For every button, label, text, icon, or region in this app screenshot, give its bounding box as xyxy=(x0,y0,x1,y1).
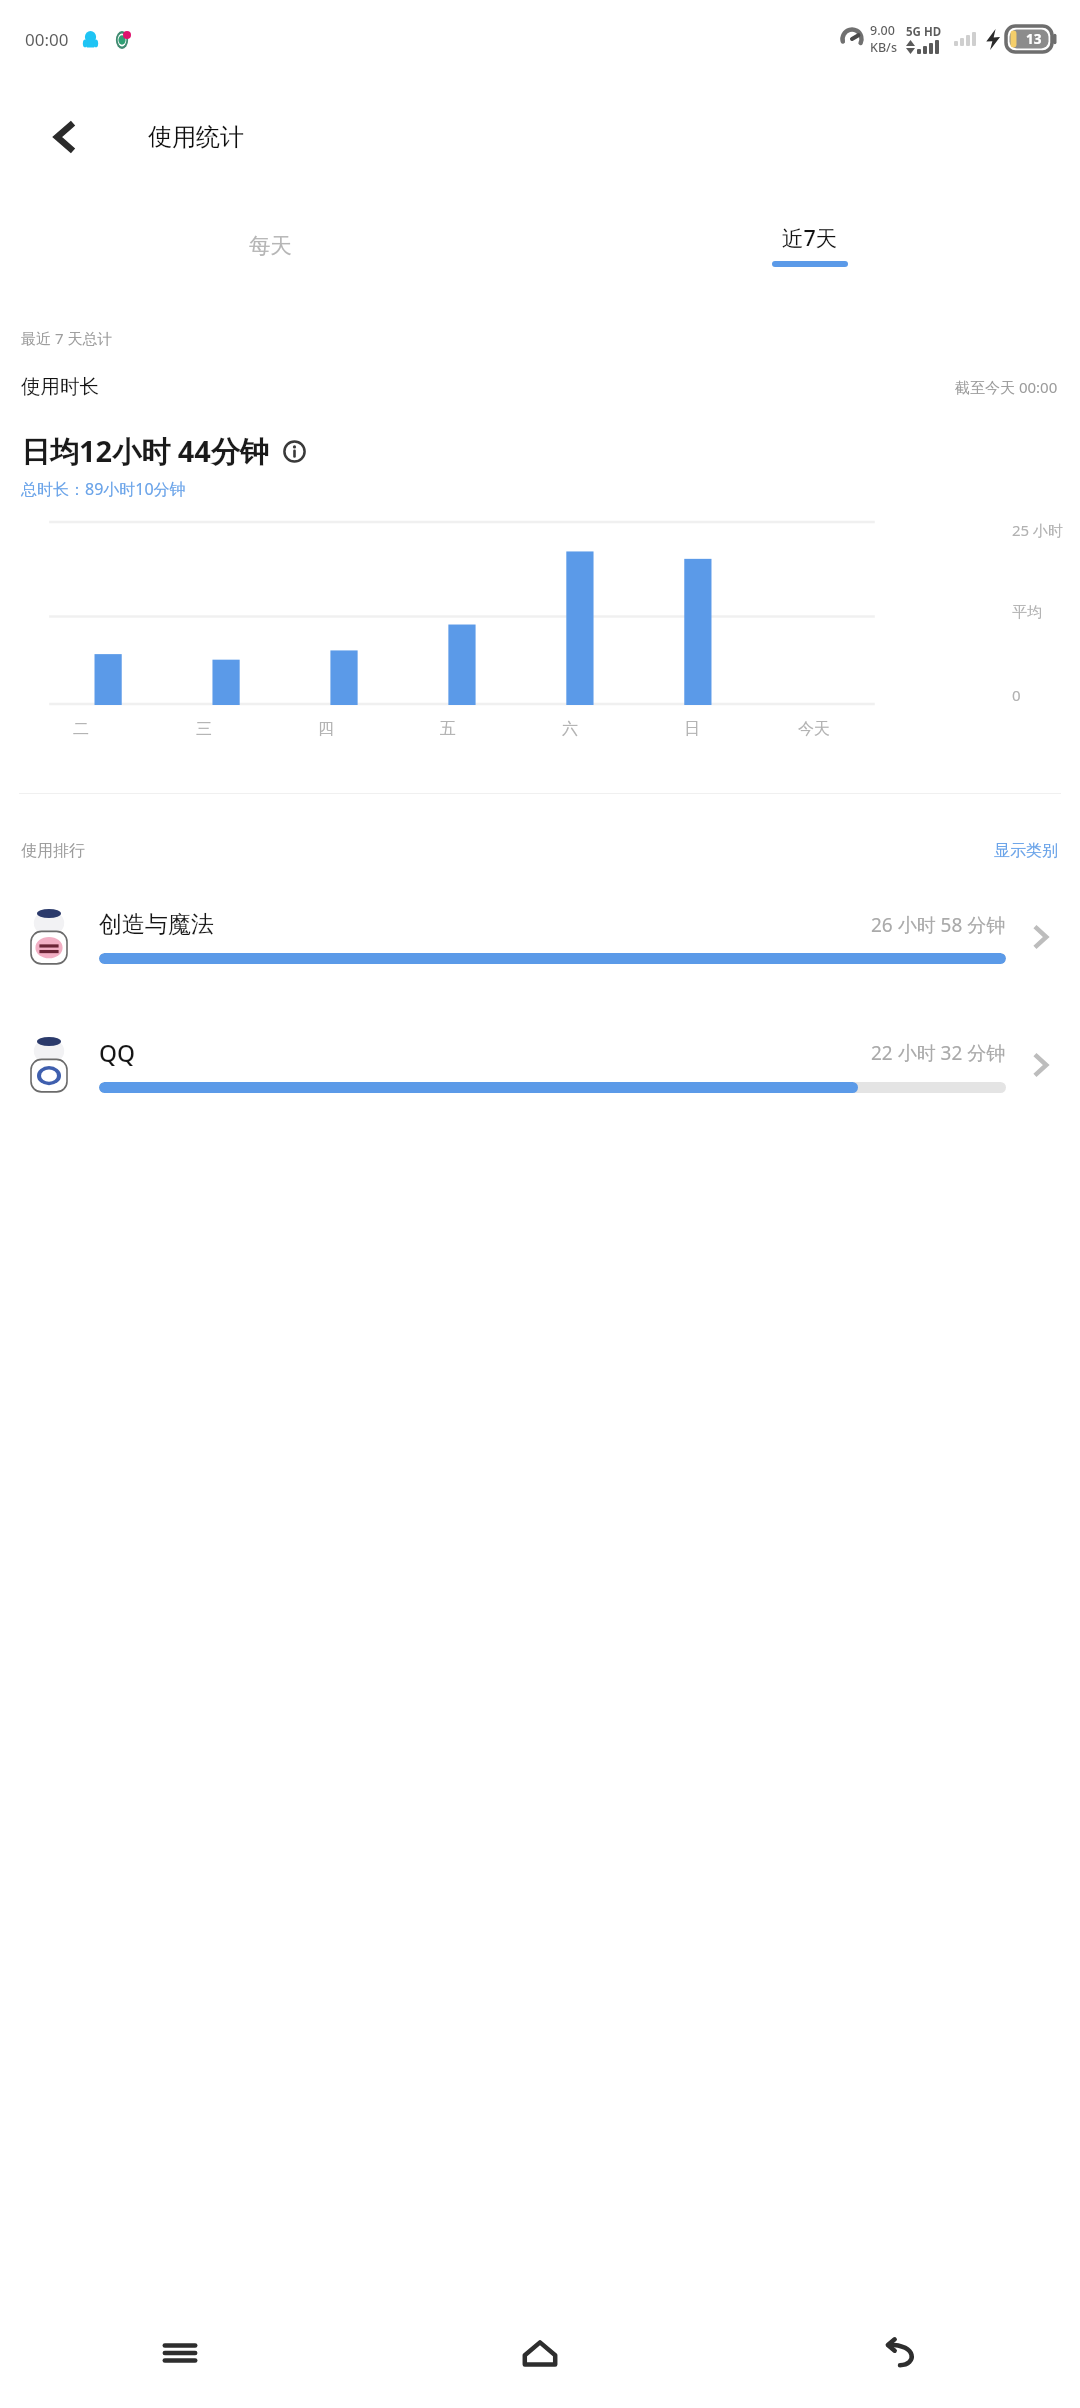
staticText: 22 小时 32 分钟 xyxy=(871,1040,1006,1066)
button[interactable]: 创造与魔法 xyxy=(0,881,1080,993)
staticText: 使用时长 xyxy=(21,374,99,399)
staticText: 13 xyxy=(1026,30,1042,48)
staticText: 创造与魔法 xyxy=(99,910,214,939)
staticText: 五 xyxy=(440,719,456,739)
staticText: 近7天 xyxy=(782,223,838,252)
staticText: 最近 7 天总计 xyxy=(21,328,113,348)
staticText: 26 小时 58 分钟 xyxy=(871,912,1006,938)
button[interactable]: 返回 xyxy=(38,110,92,164)
staticText: 三 xyxy=(196,719,212,739)
staticText: 今天 xyxy=(798,719,830,739)
button[interactable]: QQ xyxy=(0,1009,1080,1121)
staticText: 平均 xyxy=(1012,603,1042,622)
staticText: QQ xyxy=(99,1037,136,1068)
staticText: 截至今天 00:00 xyxy=(955,377,1058,397)
staticText: 显示类别 xyxy=(994,841,1058,861)
staticText: 六 xyxy=(562,719,578,739)
staticText: 0 xyxy=(1012,685,1021,705)
staticText: 使用排行 xyxy=(21,841,85,861)
staticText: 日 xyxy=(684,719,700,739)
staticText: 使用统计 xyxy=(148,122,244,152)
staticText: 9.00 xyxy=(870,22,895,39)
staticText: 00:00 xyxy=(25,28,69,51)
button[interactable]: 返回 xyxy=(720,2298,1080,2408)
staticText: 总时长：89小时10分钟 xyxy=(21,478,186,500)
staticText: 日均12小时 44分钟 xyxy=(21,431,269,471)
button[interactable]: 主页 xyxy=(360,2298,720,2408)
button[interactable]: 说明 xyxy=(278,435,310,467)
staticText: KB/s xyxy=(870,39,897,56)
staticText: 每天 xyxy=(249,232,292,259)
staticText: 5G HD xyxy=(906,24,942,40)
staticText: 二 xyxy=(73,719,89,739)
button[interactable]: 显示类别 xyxy=(994,841,1058,861)
staticText: 四 xyxy=(318,719,334,739)
button[interactable]: 最近任务 xyxy=(0,2298,360,2408)
button[interactable]: 每天 xyxy=(0,196,540,294)
button[interactable]: 近7天 xyxy=(540,196,1080,294)
staticText: 25 小时 xyxy=(1012,520,1064,540)
